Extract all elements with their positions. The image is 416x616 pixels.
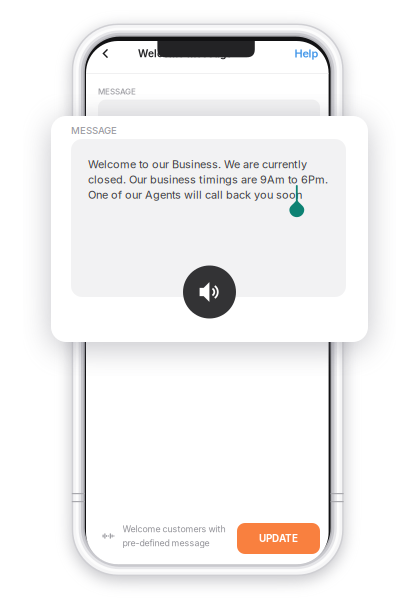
staticText: UPDATE: [259, 532, 298, 544]
button[interactable]: UPDATE: [237, 523, 320, 554]
staticText: Welcome Message: [138, 47, 232, 60]
staticText: Welcome to our Business. We are currentl…: [88, 158, 328, 201]
staticText: Welcome customers with pre-defined messa…: [122, 524, 225, 548]
button[interactable]: Back: [96, 44, 114, 62]
button[interactable]: Help: [291, 45, 321, 61]
staticText: MESSAGE: [71, 125, 117, 136]
staticText: MESSAGE: [98, 87, 136, 96]
button[interactable]: Play message audio: [183, 265, 236, 318]
staticText: Help: [294, 47, 318, 60]
